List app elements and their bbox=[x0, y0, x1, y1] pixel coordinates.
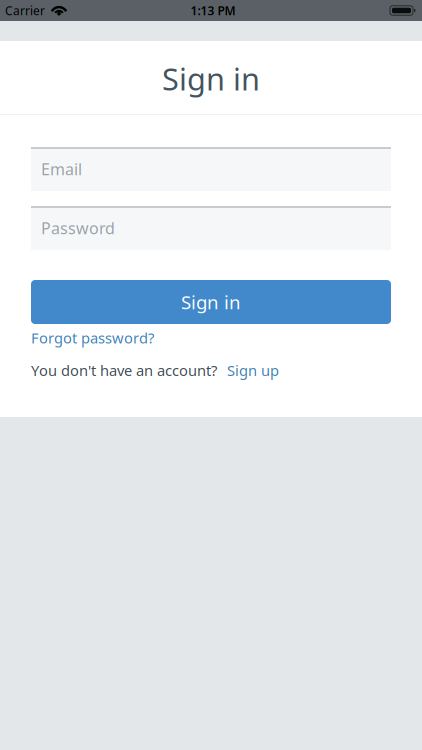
staticText: 1:13 PM bbox=[190, 2, 235, 18]
staticText: Email bbox=[41, 158, 82, 180]
staticText: Sign up bbox=[227, 360, 279, 380]
staticText: Carrier bbox=[5, 2, 45, 18]
button[interactable]: Email bbox=[31, 147, 391, 191]
button[interactable]: Sign up bbox=[217, 360, 279, 380]
button[interactable]: Sign in bbox=[31, 280, 391, 324]
staticText: Password bbox=[41, 217, 115, 239]
staticText: Sign in bbox=[181, 290, 241, 314]
staticText: Forgot password? bbox=[31, 328, 154, 347]
button[interactable]: Forgot password? bbox=[31, 328, 154, 347]
staticText: You don't have an account? bbox=[31, 360, 217, 380]
staticText: Sign in bbox=[162, 58, 260, 99]
button[interactable]: Password bbox=[31, 206, 391, 250]
